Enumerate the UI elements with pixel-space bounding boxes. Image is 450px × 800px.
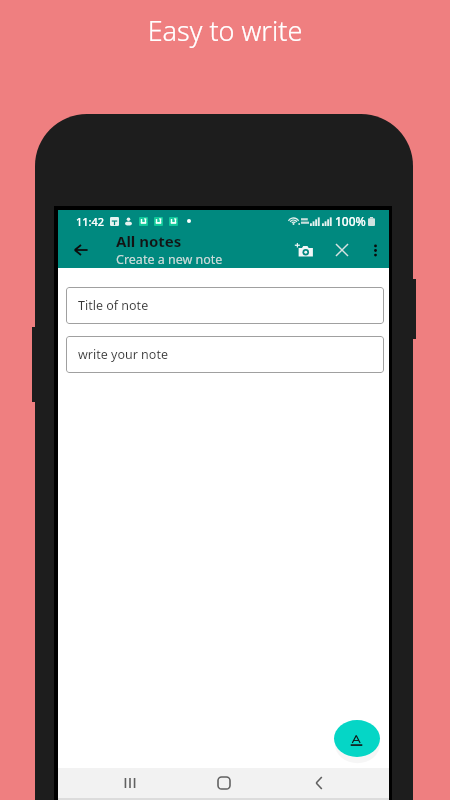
staticText: Create a new note xyxy=(116,251,223,267)
button[interactable]: More options xyxy=(361,236,389,264)
button[interactable]: Back xyxy=(66,235,96,265)
button[interactable]: Format text xyxy=(334,720,380,760)
button[interactable]: Recents xyxy=(108,768,152,798)
button[interactable]: Back xyxy=(297,768,341,798)
staticText: write your note xyxy=(78,346,168,363)
staticText: Easy to write xyxy=(0,12,450,49)
button[interactable]: write your note xyxy=(66,336,384,373)
staticText: 11:42 xyxy=(76,214,105,229)
button[interactable]: Home xyxy=(202,768,246,798)
button[interactable]: Title of note xyxy=(66,287,384,324)
button[interactable]: Add photo xyxy=(289,235,319,265)
staticText: Title of note xyxy=(78,297,149,314)
button[interactable]: Close xyxy=(327,235,357,265)
staticText: 100% xyxy=(335,213,366,229)
staticText: All notes xyxy=(116,231,182,251)
